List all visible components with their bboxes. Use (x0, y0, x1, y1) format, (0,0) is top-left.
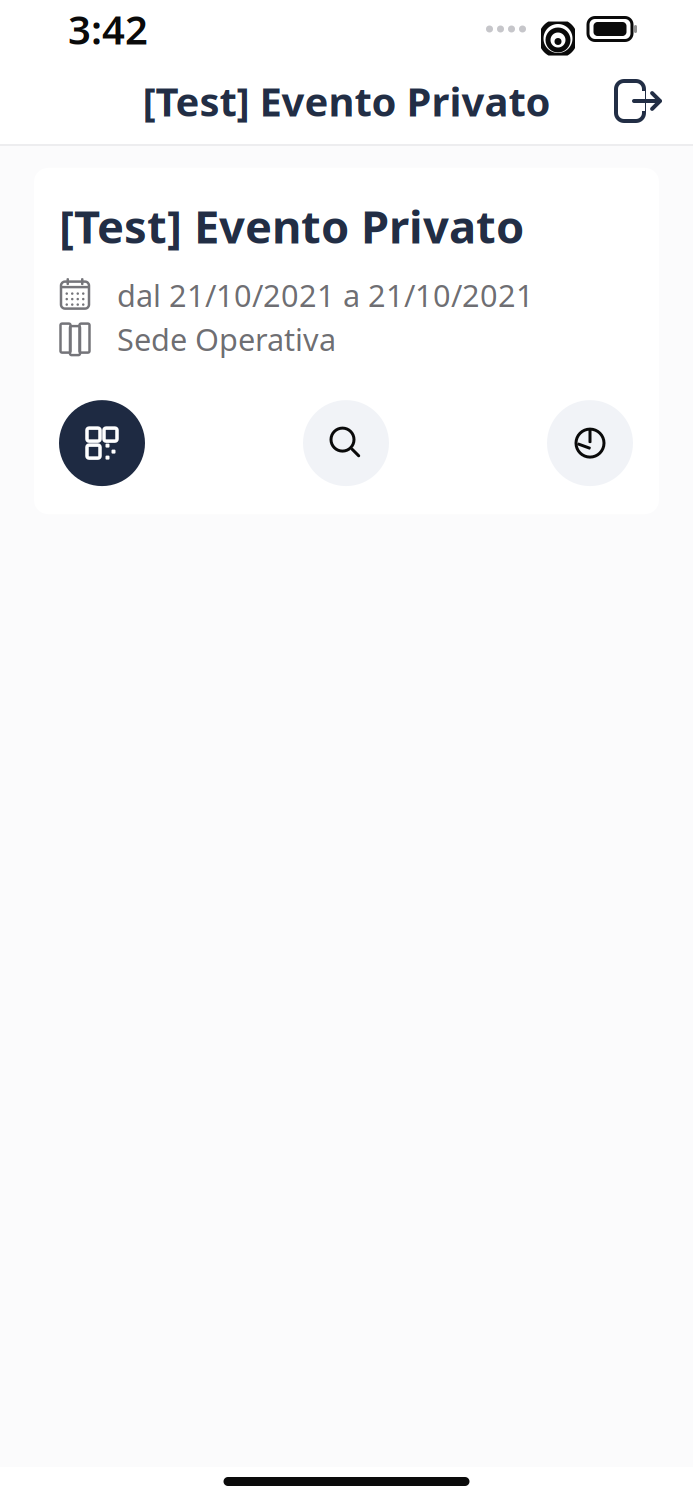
button[interactable]: Cerca (303, 400, 389, 486)
staticText: dal 21/10/2021 a 21/10/2021 (117, 275, 534, 315)
staticText: [Test] Evento Privato (59, 196, 524, 256)
staticText: 3:42 (68, 2, 148, 55)
staticText: [Test] Evento Privato (142, 74, 550, 127)
button[interactable]: Statistiche (547, 400, 633, 486)
staticText: Sede Operativa (117, 319, 336, 359)
button[interactable]: Scansiona QR code (59, 400, 145, 486)
button[interactable]: Esci (609, 70, 671, 132)
